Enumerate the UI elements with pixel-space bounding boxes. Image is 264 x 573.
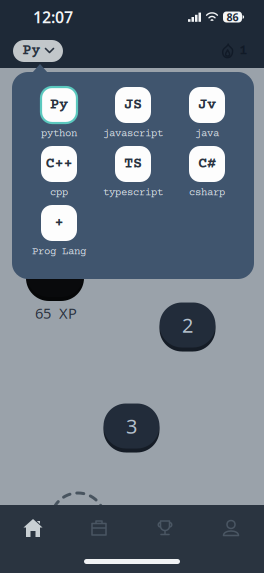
- button[interactable]: Profile: [198, 506, 264, 550]
- staticText: java: [195, 128, 219, 140]
- button[interactable]: Py: [22, 88, 96, 139]
- button[interactable]: Practice: [66, 506, 132, 550]
- staticText: csharp: [189, 187, 225, 199]
- staticText: Jv: [198, 96, 216, 114]
- button[interactable]: +: [22, 206, 96, 257]
- button[interactable]: 2: [159, 300, 215, 349]
- button[interactable]: Py: [13, 40, 63, 62]
- button[interactable]: 3: [103, 401, 159, 450]
- staticText: python: [41, 128, 77, 140]
- staticText: cpp: [50, 187, 68, 199]
- button[interactable]: Jv: [170, 88, 244, 139]
- staticText: 2: [182, 312, 193, 338]
- staticText: Py: [22, 43, 40, 59]
- button[interactable]: TS: [96, 147, 170, 198]
- staticText: 1: [239, 43, 248, 59]
- staticText: typescript: [103, 187, 163, 199]
- button[interactable]: Leaderboard: [132, 506, 198, 550]
- button[interactable]: C++: [22, 147, 96, 198]
- button[interactable]: C#: [170, 147, 244, 198]
- staticText: Py: [50, 96, 68, 114]
- staticText: JS: [124, 96, 142, 114]
- button[interactable]: Streak: [222, 43, 248, 59]
- staticText: C#: [198, 155, 216, 173]
- staticText: 3: [126, 413, 137, 439]
- staticText: Prog Lang: [32, 246, 86, 258]
- staticText: 86: [226, 10, 238, 24]
- staticText: 12:07: [33, 6, 73, 28]
- staticText: 65 XP: [35, 303, 77, 323]
- staticText: C++: [45, 155, 72, 173]
- staticText: TS: [124, 155, 142, 173]
- staticText: +: [54, 214, 63, 232]
- staticText: javascript: [103, 128, 163, 140]
- button[interactable]: Home: [0, 506, 66, 550]
- button[interactable]: JS: [96, 88, 170, 139]
